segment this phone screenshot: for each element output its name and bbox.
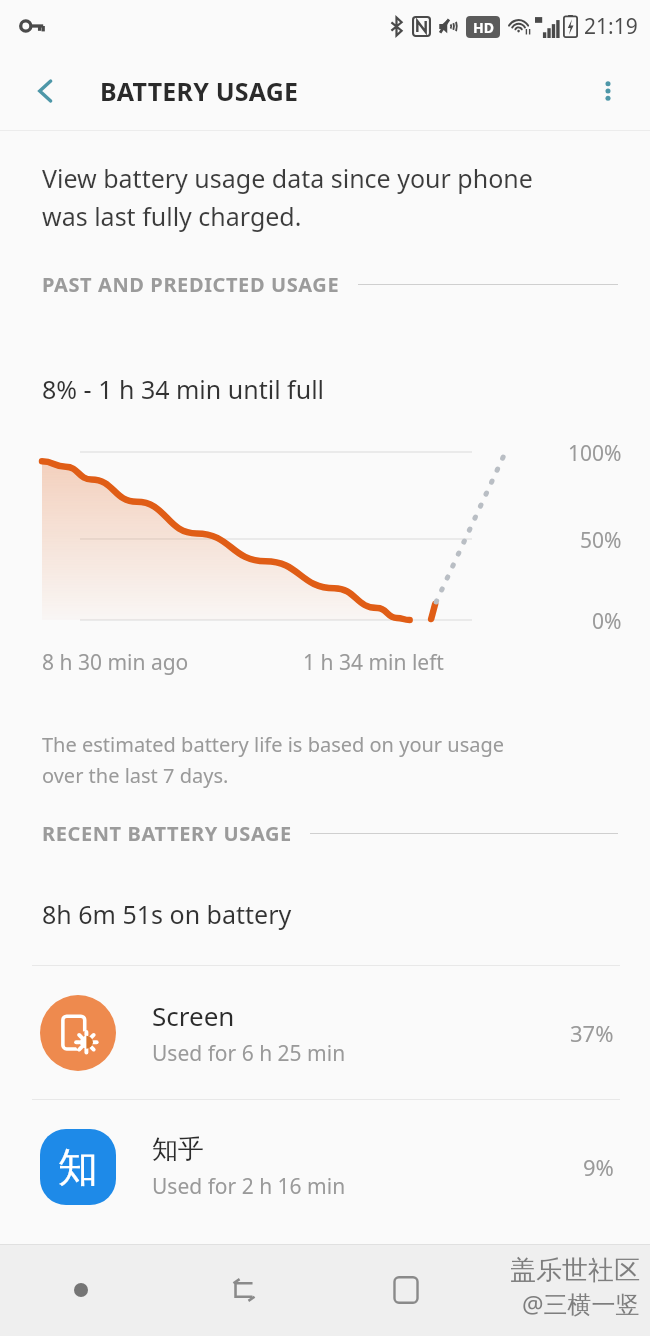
- staticText: HD: [473, 18, 494, 37]
- staticText: 8 h 30 min ago: [42, 648, 189, 677]
- button[interactable]: More options: [584, 67, 632, 115]
- staticText: The estimated battery life is based on y…: [42, 731, 505, 788]
- button[interactable]: Home: [324, 1244, 487, 1336]
- button[interactable]: Screen: [0, 966, 650, 1099]
- button[interactable]: 知: [0, 1100, 650, 1233]
- staticText: 知: [58, 1142, 98, 1192]
- staticText: 知乎: [152, 1133, 204, 1166]
- button[interactable]: Recents: [0, 1244, 162, 1336]
- staticText: BATTERY USAGE: [100, 74, 299, 108]
- staticText: 1 h 34 min left: [303, 648, 444, 677]
- staticText: @三横一竖: [522, 1287, 640, 1320]
- button[interactable]: Back: [22, 67, 70, 115]
- staticText: 8% - 1 h 34 min until full: [42, 372, 325, 406]
- staticText: 50%: [580, 526, 622, 555]
- staticText: Screen: [152, 998, 235, 1033]
- staticText: 100%: [568, 439, 622, 468]
- staticText: Used for 2 h 16 min: [152, 1172, 346, 1201]
- staticText: 盖乐世社区: [510, 1254, 640, 1287]
- staticText: 8h 6m 51s on battery: [42, 897, 292, 931]
- staticText: PAST AND PREDICTED USAGE: [42, 271, 340, 298]
- staticText: RECENT BATTERY USAGE: [42, 820, 292, 847]
- staticText: View battery usage data since your phone…: [42, 161, 533, 233]
- staticText: 9%: [583, 1152, 614, 1182]
- staticText: 37%: [570, 1018, 614, 1048]
- staticText: Used for 6 h 25 min: [152, 1039, 346, 1068]
- staticText: 21:19: [584, 12, 638, 41]
- button[interactable]: Back: [162, 1244, 324, 1336]
- staticText: 0%: [592, 607, 622, 632]
